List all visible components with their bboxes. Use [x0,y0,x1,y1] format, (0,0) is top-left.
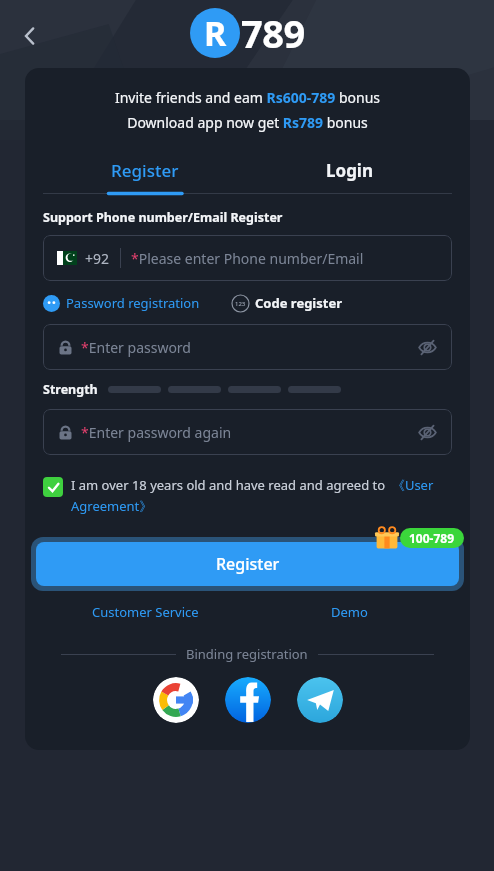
staticText: Code register [255,294,342,312]
staticText: 100-789 [409,530,455,546]
staticText: +92 [85,249,110,268]
button[interactable]: Sign in with Facebook [225,677,271,723]
button[interactable]: Show password [408,328,446,366]
staticText: Customer Service [92,603,199,621]
staticText: I am over 18 years old and have read and… [71,476,452,515]
staticText: Register [111,159,179,182]
button[interactable]: Sign in with Telegram [297,677,343,723]
button[interactable]: 123 [232,294,342,312]
button[interactable]: Show password [408,413,446,451]
button[interactable]: Customer Service [43,599,247,625]
button[interactable]: *Enter password again [43,409,452,455]
staticText: 789 [241,7,305,59]
staticText: Strength [43,381,98,398]
staticText: Password registration [66,294,200,312]
staticText: Invite friends and eam Rs600-789 bonus [25,88,470,107]
staticText: *Enter password [81,338,191,357]
button[interactable]: I am over 18 years old and have read and… [43,476,452,515]
button[interactable]: +92 [43,235,452,281]
staticText: Support Phone number/Email Register [43,209,283,226]
staticText: Binding registration [186,645,308,663]
staticText: 123 [235,300,246,308]
staticText: *Please enter Phone number/Email [131,249,364,268]
staticText: Register [216,553,280,575]
staticText: Download app now get Rs789 bonus [25,113,470,132]
button[interactable]: Demo [247,599,452,625]
button[interactable]: Register [36,542,459,586]
button[interactable]: Back [8,14,52,58]
staticText: *Enter password again [81,423,232,442]
button[interactable]: *Enter password [43,324,452,370]
staticText: Demo [331,603,368,621]
button[interactable]: Login [247,152,452,188]
staticText: R [204,10,227,56]
button[interactable]: Password registration [43,294,200,312]
button[interactable]: Sign in with Google [153,677,199,723]
staticText: Login [326,159,374,182]
button[interactable]: Register [43,152,247,188]
